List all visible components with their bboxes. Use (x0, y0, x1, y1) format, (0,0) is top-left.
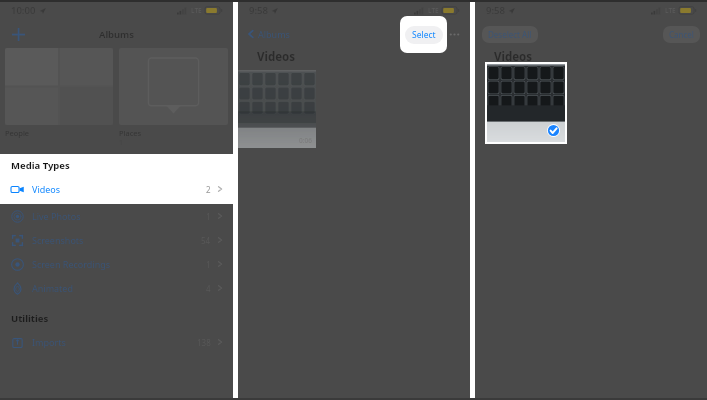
staticText: Live Photos (32, 210, 206, 222)
button[interactable]: Select (405, 26, 443, 44)
staticText: Screen Recordings (32, 258, 206, 270)
button[interactable]: People (5, 48, 113, 148)
button[interactable]: Imports (0, 330, 233, 354)
staticText: Places (119, 128, 142, 138)
staticText: Screenshots (32, 234, 201, 246)
button[interactable]: Screenshots (0, 228, 233, 252)
staticText: 1 (206, 259, 211, 270)
staticText: 1 (206, 211, 211, 222)
button[interactable]: Add album (6, 22, 30, 46)
staticText: LTE (428, 6, 439, 15)
button[interactable]: Live Photos (0, 204, 233, 228)
staticText: Utilities (11, 312, 49, 325)
staticText: Imports (32, 336, 197, 348)
staticText: 9:58 (486, 4, 505, 17)
staticText: Videos (494, 49, 533, 65)
staticText: Deselect All (488, 29, 532, 40)
staticText: 4 (206, 283, 211, 294)
staticText: Cancel (669, 29, 694, 40)
button[interactable]: 0:06 (238, 70, 316, 148)
staticText: 2 (206, 184, 211, 195)
staticText: LTE (665, 6, 676, 15)
staticText: Videos (257, 49, 296, 65)
button[interactable]: Videos (0, 177, 233, 201)
staticText: 54 (201, 235, 211, 246)
staticText: 138 (197, 337, 211, 348)
staticText: Albums (258, 28, 290, 40)
button[interactable]: Animated (0, 276, 233, 300)
staticText: Media Types (11, 159, 70, 172)
staticText: 10:00 (11, 4, 36, 17)
staticText: Albums (99, 28, 134, 41)
button[interactable]: Places (119, 48, 228, 148)
staticText: 0:06 (299, 136, 312, 145)
button[interactable]: Albums (244, 25, 292, 43)
button[interactable]: More options (446, 26, 462, 42)
button[interactable]: Deselect All (482, 26, 538, 43)
staticText: LTE (191, 6, 202, 15)
button[interactable]: Cancel (663, 26, 700, 43)
button[interactable]: Selected video (487, 64, 565, 142)
staticText: Select (412, 29, 436, 41)
staticText: Videos (32, 183, 206, 195)
staticText: 9:58 (249, 4, 268, 17)
button[interactable]: Screen Recordings (0, 252, 233, 276)
staticText: Animated (32, 282, 206, 294)
staticText: People (5, 128, 30, 138)
